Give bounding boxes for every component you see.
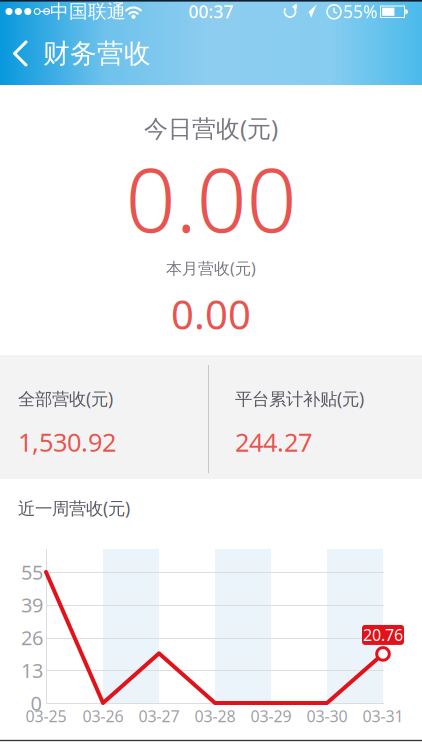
staticText: 244.27 [235, 425, 312, 459]
staticText: 03-30 [306, 705, 347, 727]
staticText: 0.00 [125, 140, 296, 256]
staticText: 03-26 [82, 705, 123, 727]
staticText: 26 [21, 624, 43, 651]
staticText: 13 [21, 657, 43, 684]
staticText: 本月营收(元) [166, 257, 256, 279]
staticText: 03-31 [362, 705, 403, 727]
staticText: 0.00 [171, 287, 251, 340]
staticText: 03-28 [194, 705, 235, 727]
button[interactable]: 返回 [0, 37, 422, 70]
staticText: 39 [21, 591, 43, 618]
staticText: 全部营收(元) [18, 387, 113, 410]
staticText: 55% [343, 0, 377, 23]
staticText: 03-27 [138, 705, 179, 727]
staticText: 平台累计补贴(元) [235, 387, 364, 410]
staticText: 今日营收(元) [144, 112, 278, 144]
staticText: 财务营收 [43, 37, 151, 70]
staticText: 0 [30, 690, 41, 716]
staticText: 03-25 [25, 705, 66, 727]
staticText: 1,530.92 [18, 425, 116, 459]
staticText: 00:37 [188, 0, 233, 23]
staticText: 近一周营收(元) [18, 496, 130, 519]
staticText: 03-29 [250, 705, 291, 727]
staticText: 中国联通 [50, 0, 126, 23]
staticText: 20.76 [363, 624, 403, 645]
staticText: 55 [21, 559, 43, 585]
